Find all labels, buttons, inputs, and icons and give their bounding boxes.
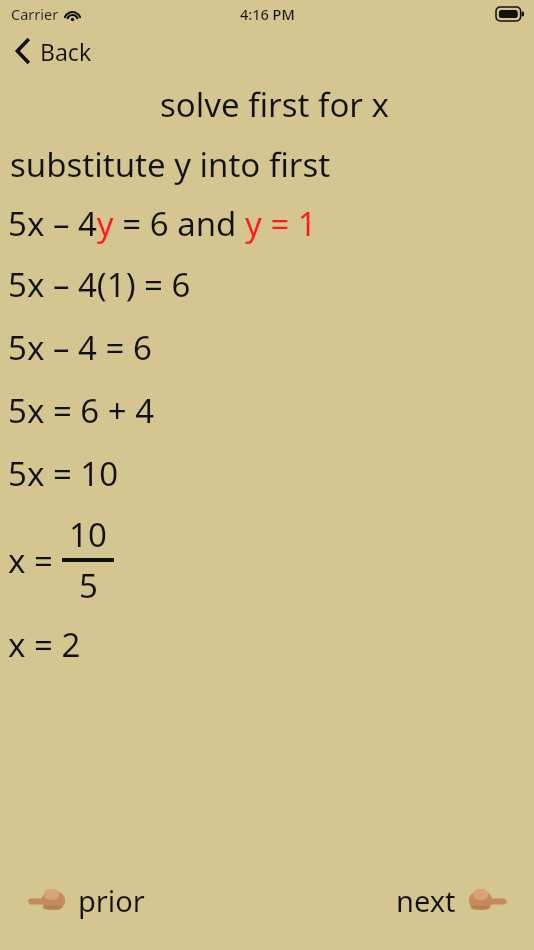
- staticText: Carrier: [11, 4, 59, 24]
- staticText: 4:16 PM: [240, 4, 295, 24]
- staticText: prior: [78, 881, 145, 920]
- button[interactable]: Previous: [16, 873, 153, 928]
- staticText: x =: [8, 538, 62, 583]
- staticText: Back: [40, 36, 92, 67]
- button[interactable]: Back: [0, 28, 534, 74]
- staticText: x = 2: [8, 622, 81, 667]
- other: Next: [468, 886, 510, 916]
- staticText: next: [396, 881, 456, 920]
- staticText: 10: [69, 512, 107, 557]
- button[interactable]: next: [388, 873, 518, 928]
- staticText: substitute y into first: [10, 142, 331, 187]
- other: Previous: [24, 886, 66, 916]
- staticText: 5x – 4y = 6 and y = 1: [8, 201, 317, 246]
- staticText: 5: [79, 563, 98, 608]
- staticText: solve first for x: [160, 82, 390, 127]
- staticText: 5x = 10: [8, 451, 119, 496]
- staticText: 5x – 4(1) = 6: [8, 262, 191, 307]
- staticText: 5x = 6 + 4: [8, 388, 155, 433]
- staticText: 5x – 4 = 6: [8, 325, 152, 370]
